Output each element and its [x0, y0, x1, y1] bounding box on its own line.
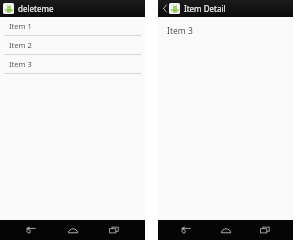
button[interactable]: Recent apps [103, 220, 125, 240]
staticText: Item 3 [167, 25, 193, 37]
staticText: Item 3 [9, 59, 32, 69]
staticText: Item 2 [9, 40, 32, 50]
button[interactable]: Back [20, 220, 42, 240]
staticText: Item 1 [9, 21, 32, 31]
button[interactable]: Item 2 [0, 36, 145, 54]
button[interactable]: Home [215, 220, 237, 240]
button[interactable]: Item 3 [0, 55, 145, 73]
button[interactable]: Recent apps [254, 220, 276, 240]
button[interactable]: Navigate up [161, 1, 168, 16]
staticText: Item Detail [184, 3, 226, 14]
button[interactable]: Back [175, 220, 197, 240]
button[interactable]: Home [62, 220, 84, 240]
staticText: deleteme [18, 3, 54, 14]
button[interactable]: Item 1 [0, 17, 145, 35]
